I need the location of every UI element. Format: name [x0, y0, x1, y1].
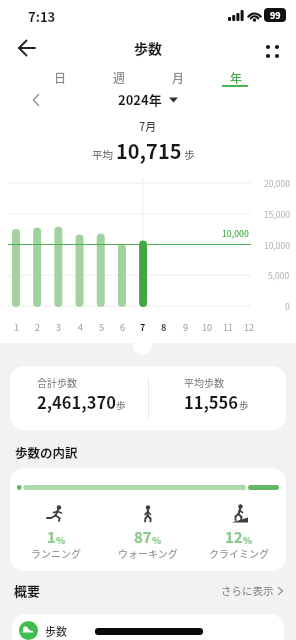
staticText: ランニング	[31, 546, 81, 560]
staticText: 10,000	[222, 227, 249, 239]
staticText: 概要	[14, 581, 41, 600]
staticText: 歩数	[134, 38, 162, 58]
staticText: 10,000	[264, 239, 290, 251]
staticText: %	[56, 533, 66, 547]
staticText: 2,461,370	[37, 390, 116, 414]
staticText: 0	[285, 300, 290, 312]
staticText: 2024年	[118, 90, 162, 109]
staticText: 7月	[139, 118, 157, 134]
staticText: 月	[172, 69, 185, 86]
staticText: 平均	[92, 147, 116, 162]
staticText: 1	[47, 526, 56, 548]
staticText: 7:13	[28, 7, 56, 26]
staticText: 5,000	[268, 269, 290, 281]
staticText: ウォーキング	[118, 546, 178, 560]
staticText: %	[243, 533, 253, 547]
staticText: 11	[223, 321, 233, 334]
staticText: さらに表示	[221, 583, 274, 598]
staticText: クライミング	[209, 546, 269, 560]
staticText: 10	[202, 321, 212, 334]
staticText: %	[152, 533, 162, 547]
staticText: 年	[230, 69, 243, 86]
staticText: 歩数	[45, 623, 67, 639]
staticText: 平均歩数	[184, 375, 224, 389]
staticText: 1	[14, 321, 19, 334]
staticText: 15,000	[264, 208, 290, 220]
staticText: 4	[78, 321, 83, 334]
staticText: 2	[35, 321, 40, 334]
staticText: 99	[270, 9, 281, 22]
staticText: 3	[56, 321, 61, 334]
staticText: 10,715	[116, 136, 182, 165]
staticText: 9	[183, 321, 188, 334]
staticText: 7	[140, 321, 146, 334]
staticText: 8	[161, 321, 167, 334]
staticText: 6	[120, 321, 125, 334]
staticText: 20,000	[264, 177, 290, 189]
staticText: 合計歩数	[37, 375, 77, 389]
staticText: 歩	[116, 398, 126, 412]
staticText: 12	[244, 321, 254, 334]
staticText: 歩	[239, 398, 249, 412]
staticText: 12	[225, 526, 243, 548]
staticText: 歩数の内訳	[15, 443, 78, 461]
staticText: 87	[134, 526, 152, 548]
staticText: 日	[54, 69, 67, 86]
staticText: 11,556	[184, 390, 239, 414]
staticText: 歩	[182, 147, 195, 162]
staticText: 5	[99, 321, 104, 334]
staticText: 週	[113, 69, 126, 86]
